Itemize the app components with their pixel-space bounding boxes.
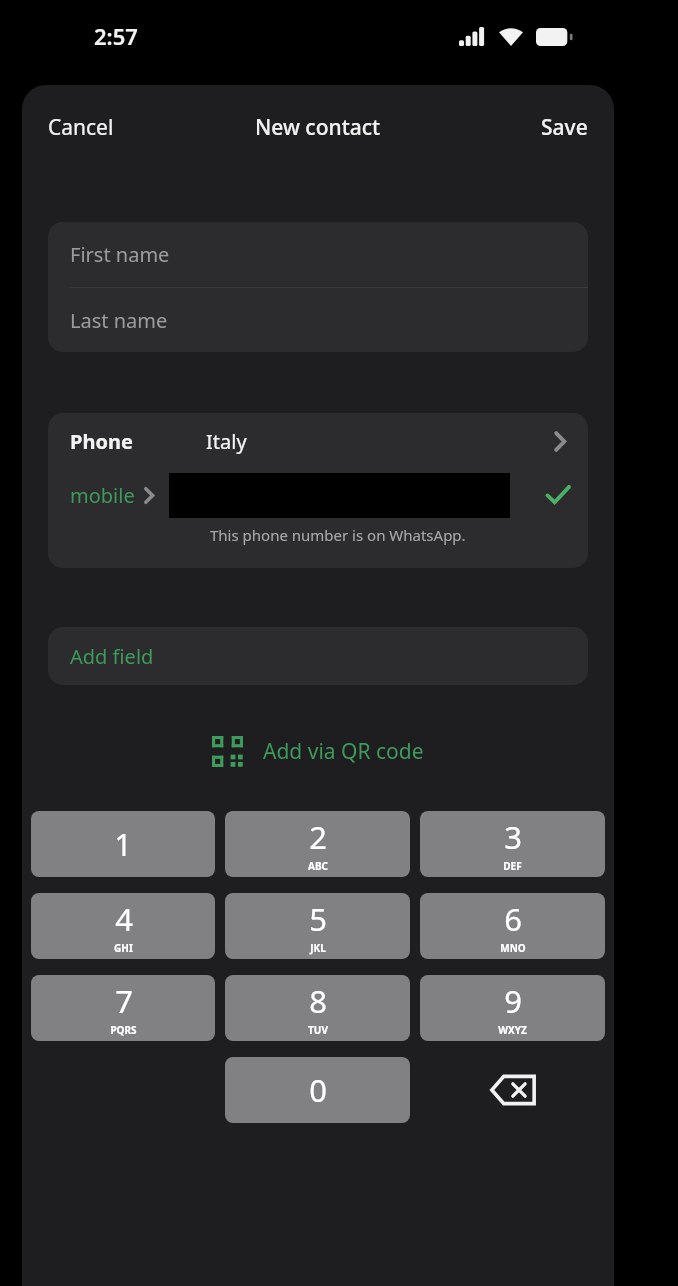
staticText: TUV [308, 1023, 328, 1037]
staticText: Cancel [48, 113, 114, 142]
staticText: 8 [309, 980, 327, 1022]
staticText: 9 [504, 980, 522, 1022]
staticText: 2 [309, 816, 327, 858]
staticText: 0 [309, 1069, 327, 1111]
button[interactable]: 7 [31, 975, 215, 1041]
button[interactable]: Save [515, 101, 614, 154]
staticText: 6 [504, 898, 522, 940]
staticText: 7 [115, 980, 133, 1022]
staticText: mobile [70, 482, 135, 509]
button[interactable]: Add via QR code [198, 730, 438, 773]
button[interactable]: First name [48, 222, 588, 287]
button[interactable]: mobile [48, 482, 154, 509]
staticText: ABC [308, 859, 328, 873]
button[interactable]: 4 [31, 893, 215, 959]
button[interactable]: Backspace [420, 1057, 605, 1123]
staticText: JKL [310, 941, 326, 955]
button[interactable]: 9 [420, 975, 605, 1041]
staticText: Last name [70, 307, 168, 334]
button[interactable]: Cancel [22, 101, 140, 154]
staticText: 2:57 [94, 21, 138, 51]
staticText: WXYZ [498, 1023, 527, 1037]
staticText: Add field [70, 643, 154, 670]
staticText: Add via QR code [263, 737, 424, 766]
button[interactable]: 8 [225, 975, 410, 1041]
staticText: This phone number is on WhatsApp. [210, 525, 466, 545]
button[interactable]: 3 [420, 811, 605, 877]
button[interactable]: 0 [225, 1057, 410, 1123]
staticText: 3 [504, 816, 522, 858]
staticText: Italy [206, 428, 247, 455]
button[interactable]: Phone [48, 413, 588, 470]
button[interactable]: 2 [225, 811, 410, 877]
staticText: DEF [503, 859, 522, 873]
staticText: 1 [114, 823, 132, 865]
button[interactable]: 6 [420, 893, 605, 959]
button[interactable]: Last name [48, 288, 588, 352]
button[interactable]: 1 [31, 811, 215, 877]
staticText: Phone [70, 428, 133, 455]
button[interactable]: Add field [48, 627, 588, 685]
staticText: New contact [255, 113, 381, 142]
staticText: 4 [115, 898, 133, 940]
staticText: GHI [114, 941, 133, 955]
staticText: PQRS [110, 1023, 137, 1037]
staticText: Save [541, 113, 588, 142]
staticText: First name [70, 241, 170, 268]
button[interactable]: 5 [225, 893, 410, 959]
staticText: 5 [309, 898, 327, 940]
staticText: MNO [500, 941, 526, 955]
